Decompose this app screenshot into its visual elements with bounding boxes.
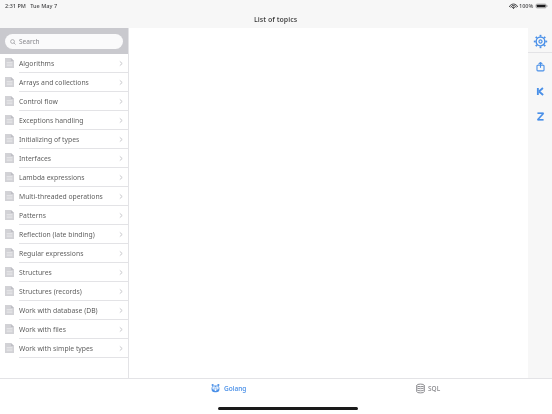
staticText: 2:31 PM Tue May 7	[5, 2, 58, 9]
staticText: Algorithms	[19, 59, 55, 68]
staticText: Work with files	[19, 325, 66, 334]
button[interactable]: Reflection (late binding)	[0, 225, 128, 244]
staticText: Regular expressions	[19, 249, 84, 258]
button[interactable]: Kotlin	[530, 81, 550, 101]
button[interactable]: Initializing of types	[0, 130, 128, 149]
button[interactable]: Arrays and collections	[0, 73, 128, 92]
button[interactable]: Work with simple types	[0, 339, 128, 358]
staticText: Patterns	[19, 211, 46, 220]
button[interactable]: Search	[5, 34, 123, 49]
staticText: Work with simple types	[19, 344, 94, 353]
button[interactable]: Multi-threaded operations	[0, 187, 128, 206]
button[interactable]: Algorithms	[0, 54, 128, 73]
button[interactable]: Structures	[0, 263, 128, 282]
button[interactable]: Lambda expressions	[0, 168, 128, 187]
button[interactable]: Work with files	[0, 320, 128, 339]
staticText: Lambda expressions	[19, 173, 85, 182]
button[interactable]: Exceptions handling	[0, 111, 128, 130]
button[interactable]: Golang	[206, 381, 251, 396]
staticText: Golang	[224, 384, 247, 393]
staticText: List of topics	[254, 15, 298, 25]
staticText: SQL	[428, 384, 441, 393]
staticText: Work with database (DB)	[19, 306, 98, 315]
button[interactable]: Zig	[530, 106, 550, 126]
button[interactable]: SQL	[412, 381, 445, 396]
staticText: Structures (records)	[19, 287, 82, 296]
staticText: Control flow	[19, 97, 58, 106]
staticText: Exceptions handling	[19, 116, 84, 125]
button[interactable]: Interfaces	[0, 149, 128, 168]
staticText: Multi-threaded operations	[19, 192, 103, 201]
button[interactable]: Structures (records)	[0, 282, 128, 301]
staticText: Interfaces	[19, 154, 52, 163]
button[interactable]: Share	[530, 56, 550, 76]
button[interactable]: Patterns	[0, 206, 128, 225]
button[interactable]: Regular expressions	[0, 244, 128, 263]
button[interactable]: Settings	[530, 31, 550, 51]
staticText: Arrays and collections	[19, 78, 89, 87]
staticText: Search	[19, 37, 40, 46]
staticText: Reflection (late binding)	[19, 230, 95, 239]
staticText: Initializing of types	[19, 135, 80, 144]
button[interactable]: Control flow	[0, 92, 128, 111]
staticText: 100%	[519, 2, 534, 9]
staticText: Structures	[19, 268, 52, 277]
button[interactable]: Work with database (DB)	[0, 301, 128, 320]
